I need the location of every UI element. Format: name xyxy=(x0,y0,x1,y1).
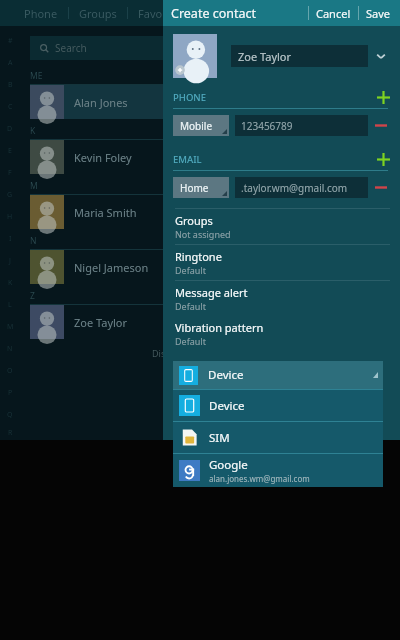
staticText: Groups xyxy=(175,213,213,228)
staticText: alan.jones.wm@gmail.com xyxy=(209,473,310,484)
staticText: Google xyxy=(209,457,248,473)
staticText: Vibration pattern xyxy=(175,320,264,335)
staticText: Displaying 4 contacts xyxy=(152,347,242,359)
button[interactable]: Remove field xyxy=(368,115,394,136)
staticText: Default xyxy=(175,264,206,276)
staticText: I xyxy=(9,234,12,244)
staticText: Nigel Jameson xyxy=(74,260,149,275)
staticText: Save xyxy=(366,6,391,21)
button[interactable]: Alan Jones xyxy=(30,85,372,119)
staticText: Search xyxy=(55,41,87,55)
button[interactable]: Save xyxy=(359,1,398,26)
staticText: E xyxy=(8,146,12,156)
staticText: Default xyxy=(175,335,206,347)
staticText: Zoe Taylor xyxy=(74,315,128,330)
button[interactable]: Search xyxy=(30,36,372,60)
staticText: Cancel xyxy=(316,6,351,21)
staticText: Alan Jones xyxy=(74,95,128,110)
staticText: N xyxy=(7,344,13,354)
button[interactable]: Phone xyxy=(14,2,68,25)
button[interactable]: Add EMAIL xyxy=(372,148,394,170)
button[interactable]: 123456789 xyxy=(235,115,368,136)
staticText: ME xyxy=(30,70,43,82)
staticText: 123456789 xyxy=(241,119,293,133)
button[interactable]: Expand name fields xyxy=(368,45,394,67)
button[interactable]: Device xyxy=(173,390,383,421)
staticText: Device xyxy=(209,398,245,414)
staticText: EMAIL xyxy=(173,153,202,166)
staticText: Device xyxy=(208,367,244,383)
staticText: Home xyxy=(180,181,209,195)
staticText: F xyxy=(8,168,12,178)
staticText: Mobile xyxy=(180,119,213,133)
staticText: Z xyxy=(30,290,35,302)
staticText: SIM xyxy=(209,430,230,446)
button[interactable]: Mobile xyxy=(173,115,229,136)
staticText: Default xyxy=(175,300,206,312)
staticText: K xyxy=(8,278,13,288)
staticText: Q xyxy=(7,410,13,420)
staticText: L xyxy=(8,300,12,310)
button[interactable]: Maria Smith xyxy=(30,195,372,229)
staticText: .taylor.wm@gmail.com xyxy=(241,181,348,195)
button[interactable]: Add contact photo xyxy=(173,34,217,78)
staticText: Message alert xyxy=(175,285,248,300)
staticText: O xyxy=(7,366,13,376)
button[interactable]: Kevin Foley xyxy=(30,140,372,174)
button[interactable]: Zoe Taylor xyxy=(231,45,368,67)
button[interactable]: Groups xyxy=(69,2,127,25)
staticText: Kevin Foley xyxy=(74,150,132,165)
button[interactable]: Add PHONE xyxy=(372,86,394,108)
button[interactable]: Message alert xyxy=(163,280,400,316)
staticText: G xyxy=(7,190,13,200)
staticText: Favo xyxy=(138,6,163,21)
button[interactable]: .taylor.wm@gmail.com xyxy=(235,177,368,198)
staticText: H xyxy=(7,212,13,222)
staticText: Not assigned xyxy=(175,228,231,240)
button[interactable]: Google xyxy=(173,454,383,487)
button[interactable]: Remove field xyxy=(368,177,394,198)
staticText: Phone xyxy=(24,6,58,21)
staticText: K xyxy=(30,125,36,137)
button[interactable]: Vibration pattern xyxy=(163,316,400,351)
staticText: Ringtone xyxy=(175,249,222,264)
staticText: N xyxy=(30,235,37,247)
button[interactable]: Ringtone xyxy=(163,244,400,280)
staticText: D xyxy=(7,124,13,134)
staticText: PHONE xyxy=(173,91,207,104)
staticText: A xyxy=(8,58,13,68)
staticText: M xyxy=(7,322,14,332)
button[interactable]: Favo xyxy=(128,2,173,25)
button[interactable]: Nigel Jameson xyxy=(30,250,372,284)
staticText: R xyxy=(8,428,13,438)
staticText: B xyxy=(8,80,13,90)
button[interactable]: Zoe Taylor xyxy=(30,305,372,339)
button[interactable]: Home xyxy=(173,177,229,198)
button[interactable]: Cancel xyxy=(309,1,358,26)
staticText: J xyxy=(9,256,11,266)
staticText: Maria Smith xyxy=(74,205,137,220)
staticText: # xyxy=(8,36,13,46)
button[interactable]: SIM xyxy=(173,422,383,453)
staticText: M xyxy=(30,180,38,192)
staticText: C xyxy=(8,102,13,112)
staticText: P xyxy=(8,388,13,398)
staticText: Create contact xyxy=(171,5,257,22)
button[interactable]: Groups xyxy=(163,208,400,244)
staticText: Groups xyxy=(79,6,117,21)
staticText: Zoe Taylor xyxy=(238,49,292,64)
button[interactable]: Device xyxy=(173,361,383,389)
